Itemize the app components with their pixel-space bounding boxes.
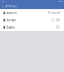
staticText: ▪▪ ▪ ▪ xyxy=(58,1,62,2)
staticText: Backup xyxy=(6,26,15,29)
staticText: 12 GB xyxy=(51,18,60,22)
staticText: Storage xyxy=(6,18,16,22)
staticText: Personal xyxy=(48,11,60,15)
button[interactable]: Backup xyxy=(0,24,64,31)
staticText: On xyxy=(56,26,60,29)
staticText: Settings xyxy=(5,4,16,8)
staticText: ‹ xyxy=(2,4,3,9)
button[interactable]: Storage xyxy=(0,17,64,24)
button[interactable]: Account xyxy=(0,9,64,17)
staticText: Account xyxy=(6,11,17,15)
button[interactable]: Back xyxy=(1,4,4,9)
staticText: 9:41 xyxy=(2,1,5,2)
